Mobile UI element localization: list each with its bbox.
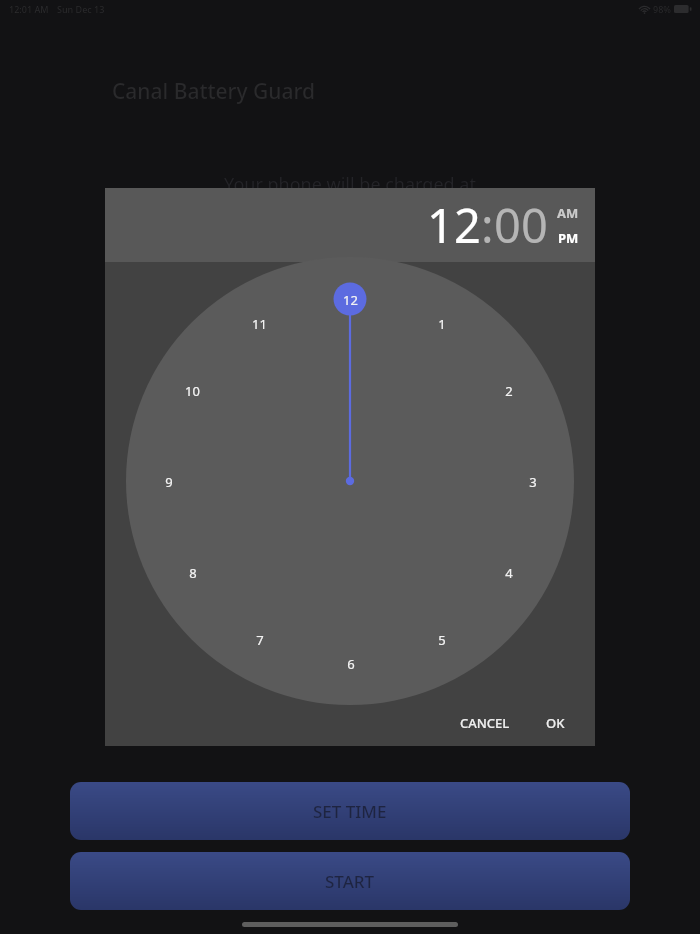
staticText: Your phone will be charged at [224, 172, 476, 197]
other: Wi-Fi [639, 4, 650, 15]
button[interactable]: PM [558, 229, 579, 247]
button[interactable]: 7 [243, 623, 276, 656]
button[interactable]: 4 [492, 556, 525, 589]
button[interactable]: CANCEL [452, 708, 518, 738]
other: Battery [674, 5, 691, 13]
button[interactable]: 1 [425, 307, 458, 340]
staticText: Sun Dec 13 [57, 3, 105, 15]
button[interactable]: 11 [243, 307, 276, 340]
staticText: 12:01 AM [9, 3, 49, 15]
staticText: 11 [252, 315, 267, 333]
staticText: SET TIME [313, 800, 387, 823]
button[interactable]: 3 [516, 465, 549, 498]
button[interactable]: 12 [427, 193, 481, 257]
staticText: OK [546, 714, 565, 732]
staticText: 7 [256, 631, 264, 649]
button[interactable]: OK [538, 708, 573, 738]
button[interactable]: 10 [176, 374, 209, 407]
button[interactable]: SET TIME [70, 782, 630, 840]
staticText: CANCEL [460, 714, 510, 732]
button[interactable]: START [70, 852, 630, 910]
button[interactable]: 9 [152, 465, 185, 498]
staticText: 12 [343, 291, 358, 309]
staticText: 6 [347, 655, 355, 673]
staticText: 98% [653, 3, 671, 15]
staticText: Canal Battery Guard [112, 77, 315, 106]
button[interactable]: 12 [334, 283, 367, 316]
staticText: 8 [189, 564, 197, 582]
staticText: 10 [185, 382, 200, 400]
staticText: 5 [438, 631, 446, 649]
staticText: 1 [438, 315, 446, 333]
staticText: 9 [165, 473, 173, 491]
staticText: 3 [529, 473, 537, 491]
staticText: 2 [505, 382, 513, 400]
button[interactable]: 5 [425, 623, 458, 656]
button[interactable]: 2 [492, 374, 525, 407]
button[interactable]: 6 [334, 647, 367, 680]
button[interactable]: 8 [176, 556, 209, 589]
staticText: : [481, 193, 494, 257]
staticText: START [325, 870, 375, 893]
button[interactable]: 00 [494, 193, 548, 257]
button[interactable]: AM [557, 204, 579, 222]
staticText: 4 [505, 564, 513, 582]
